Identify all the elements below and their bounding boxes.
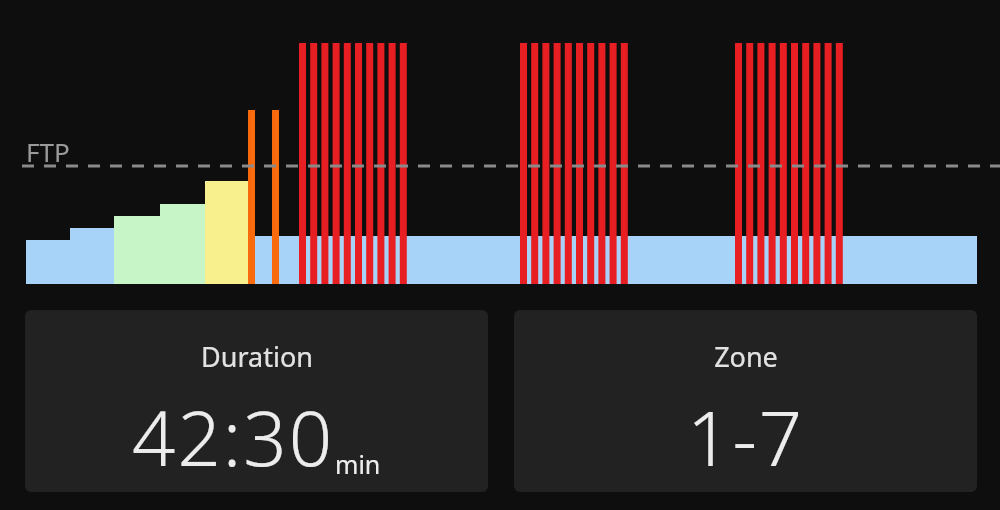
staticText: 42:30 [132, 385, 335, 489]
button[interactable]: Zone [514, 310, 977, 492]
staticText: Duration [201, 338, 313, 375]
other: Workout power profile chart [0, 0, 1000, 300]
staticText: 1-7 [687, 385, 805, 489]
staticText: Zone [714, 338, 778, 375]
staticText: min [335, 447, 381, 481]
button[interactable]: Duration [25, 310, 488, 492]
staticText: FTP [26, 134, 70, 169]
